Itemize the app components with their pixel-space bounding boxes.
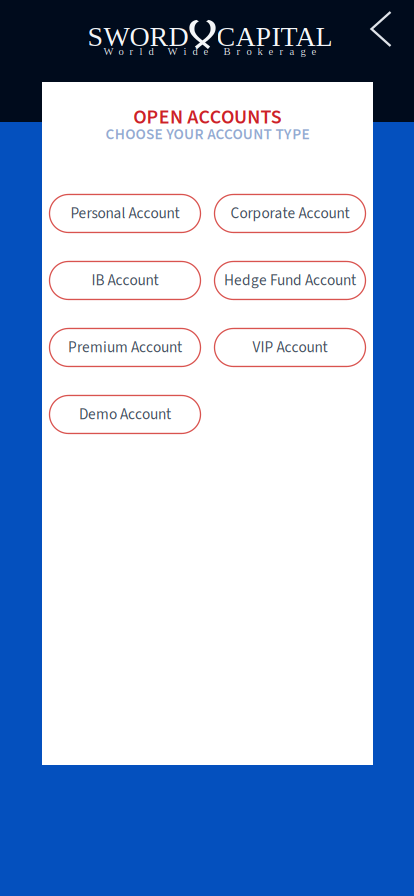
button[interactable]: IB Account <box>49 261 200 299</box>
button[interactable]: Hedge Fund Account <box>214 261 365 299</box>
staticText: SWORD <box>87 21 188 52</box>
staticText: CAPITAL <box>216 21 332 52</box>
staticText: OPEN ACCOUNTS <box>133 103 282 131</box>
staticText: VIP Account <box>252 337 327 358</box>
staticText: Premium Account <box>68 337 182 358</box>
staticText: Personal Account <box>70 203 179 224</box>
staticText: World Wide Brokerage <box>103 46 316 57</box>
staticText: Hedge Fund Account <box>224 270 356 291</box>
button[interactable]: Premium Account <box>49 328 200 366</box>
button[interactable]: Personal Account <box>49 194 200 232</box>
button[interactable]: Back <box>369 10 393 48</box>
button[interactable]: Demo Account <box>49 395 200 433</box>
staticText: Corporate Account <box>230 203 349 224</box>
staticText: CHOOSE YOUR ACCOUNT TYPE <box>105 124 310 145</box>
staticText: IB Account <box>91 270 158 291</box>
staticText: Demo Account <box>79 404 171 425</box>
button[interactable]: VIP Account <box>214 328 365 366</box>
button[interactable]: Corporate Account <box>214 194 365 232</box>
